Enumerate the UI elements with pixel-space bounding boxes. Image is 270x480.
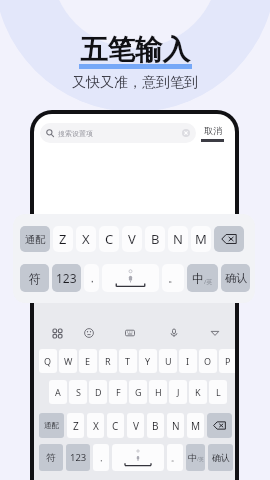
button[interactable]: Voice input bbox=[165, 324, 183, 342]
button[interactable]: X bbox=[87, 413, 104, 438]
button[interactable]: H bbox=[149, 380, 167, 404]
button[interactable]: Emoji bbox=[80, 324, 98, 342]
staticText: 又快又准，意到笔到 bbox=[72, 74, 198, 92]
button[interactable]: 123 bbox=[66, 444, 90, 471]
staticText: T bbox=[125, 355, 131, 367]
button[interactable]: N bbox=[168, 226, 188, 252]
button[interactable]: 符 bbox=[39, 444, 63, 471]
button[interactable]: G bbox=[129, 380, 147, 404]
staticText: 搜索设置项 bbox=[58, 129, 93, 138]
staticText: 确认 bbox=[225, 271, 247, 285]
button[interactable]: Z bbox=[53, 226, 73, 252]
staticText: N bbox=[173, 230, 183, 248]
button[interactable]: Backspace bbox=[207, 413, 232, 438]
button[interactable]: M bbox=[191, 226, 211, 252]
button[interactable]: B bbox=[147, 413, 164, 438]
button[interactable]: P bbox=[219, 349, 235, 373]
button[interactable]: Space bbox=[102, 264, 159, 292]
button[interactable]: 。 bbox=[167, 444, 183, 471]
staticText: N bbox=[172, 419, 180, 433]
button[interactable]: K bbox=[189, 380, 207, 404]
button[interactable]: 通配 bbox=[39, 413, 64, 438]
button[interactable]: L bbox=[209, 380, 227, 404]
button[interactable]: N bbox=[167, 413, 184, 438]
staticText: 取消 bbox=[204, 125, 222, 136]
staticText: Y bbox=[145, 355, 151, 367]
button[interactable]: I bbox=[179, 349, 197, 373]
button[interactable]: C bbox=[99, 226, 119, 252]
staticText: R bbox=[105, 355, 111, 367]
button[interactable]: Clear text bbox=[182, 129, 190, 137]
button[interactable]: V bbox=[122, 226, 142, 252]
button[interactable]: 搜索设置项 bbox=[40, 123, 196, 143]
button[interactable]: J bbox=[169, 380, 187, 404]
staticText: 确认 bbox=[212, 452, 230, 463]
button[interactable]: S bbox=[69, 380, 87, 404]
button[interactable]: 确认 bbox=[208, 444, 233, 471]
staticText: 通配 bbox=[44, 421, 59, 430]
button[interactable]: Q bbox=[39, 349, 57, 373]
button[interactable]: Keyboard settings bbox=[121, 324, 139, 342]
button[interactable]: C bbox=[107, 413, 124, 438]
staticText: 通配 bbox=[25, 233, 45, 246]
staticText: /英 bbox=[204, 278, 213, 286]
button[interactable]: 。 bbox=[162, 264, 184, 292]
staticText: M bbox=[191, 419, 201, 433]
button[interactable]: T bbox=[119, 349, 137, 373]
button[interactable]: M bbox=[187, 413, 204, 438]
button[interactable]: 通配 bbox=[20, 226, 50, 252]
staticText: /英 bbox=[197, 456, 204, 463]
button[interactable]: 123 bbox=[52, 264, 81, 292]
staticText: W bbox=[64, 355, 73, 367]
staticText: B bbox=[151, 230, 160, 248]
button[interactable]: Z bbox=[67, 413, 84, 438]
button[interactable]: R bbox=[99, 349, 117, 373]
staticText: 五笔输入 bbox=[80, 33, 190, 68]
button[interactable]: Hide keyboard bbox=[206, 324, 224, 342]
staticText: M bbox=[195, 230, 207, 248]
button[interactable]: 取消 bbox=[201, 125, 224, 142]
staticText: ， bbox=[87, 272, 97, 285]
staticText: V bbox=[133, 419, 139, 433]
staticText: U bbox=[165, 355, 172, 367]
button[interactable]: U bbox=[159, 349, 177, 373]
staticText: D bbox=[95, 386, 102, 398]
staticText: S bbox=[76, 386, 81, 398]
button[interactable]: O bbox=[199, 349, 217, 373]
staticText: G bbox=[135, 386, 142, 398]
button[interactable]: Y bbox=[139, 349, 157, 373]
staticText: J bbox=[177, 386, 180, 398]
button[interactable]: 中 bbox=[186, 444, 205, 471]
staticText: I bbox=[186, 355, 190, 367]
staticText: C bbox=[112, 419, 119, 433]
button[interactable]: B bbox=[145, 226, 165, 252]
staticText: P bbox=[225, 355, 231, 367]
staticText: 。 bbox=[168, 272, 178, 285]
button[interactable]: ， bbox=[84, 264, 99, 292]
button[interactable]: V bbox=[127, 413, 144, 438]
button[interactable]: 符 bbox=[20, 264, 49, 292]
staticText: 123 bbox=[56, 270, 77, 286]
button[interactable]: Backspace bbox=[214, 226, 244, 252]
button[interactable]: Space bbox=[112, 444, 164, 471]
button[interactable]: ， bbox=[93, 444, 109, 471]
button[interactable]: W bbox=[59, 349, 77, 373]
staticText: C bbox=[105, 230, 114, 248]
staticText: 符 bbox=[46, 452, 56, 464]
button[interactable]: Keyboard layouts bbox=[48, 324, 66, 342]
staticText: E bbox=[85, 355, 91, 367]
staticText: X bbox=[82, 230, 90, 248]
staticText: 。 bbox=[171, 453, 179, 463]
button[interactable]: A bbox=[49, 380, 67, 404]
staticText: Z bbox=[59, 230, 67, 248]
staticText: Z bbox=[73, 419, 79, 433]
button[interactable]: E bbox=[79, 349, 97, 373]
button[interactable]: X bbox=[76, 226, 96, 252]
staticText: L bbox=[216, 386, 221, 398]
staticText: 中 bbox=[192, 271, 204, 286]
button[interactable]: 中 bbox=[187, 264, 218, 292]
button[interactable]: 确认 bbox=[221, 264, 250, 292]
staticText: 符 bbox=[29, 271, 41, 286]
button[interactable]: D bbox=[89, 380, 107, 404]
button[interactable]: F bbox=[109, 380, 127, 404]
